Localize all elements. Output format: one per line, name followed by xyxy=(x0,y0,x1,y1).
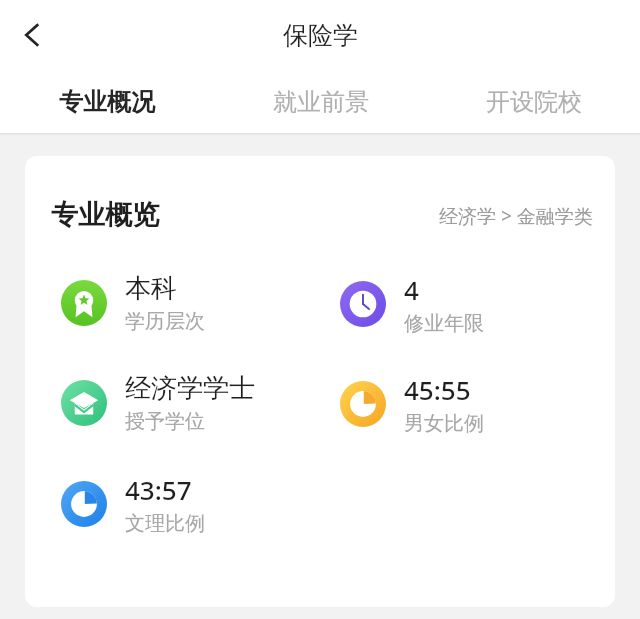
staticText: 修业年限 xyxy=(404,311,484,336)
staticText: 本科 xyxy=(125,272,177,305)
staticText: 学历层次 xyxy=(125,309,205,334)
button[interactable]: 开设院校 xyxy=(427,70,640,133)
staticText: 保险学 xyxy=(283,20,358,51)
staticText: 授予学位 xyxy=(125,409,205,434)
staticText: 45:55 xyxy=(404,372,471,407)
button[interactable]: 专业概览 xyxy=(25,156,615,607)
button[interactable]: Back xyxy=(6,9,58,61)
staticText: 经济学学士 xyxy=(125,372,255,405)
staticText: 专业概览 xyxy=(51,198,159,232)
staticText: 文理比例 xyxy=(125,511,205,536)
button[interactable]: 经济学学士 xyxy=(61,372,255,434)
button[interactable]: 4 xyxy=(340,272,484,336)
button[interactable]: 就业前景 xyxy=(214,70,427,133)
staticText: 4 xyxy=(404,272,419,307)
button[interactable]: 43:57 xyxy=(61,472,205,536)
button[interactable]: 专业概况 xyxy=(0,70,214,133)
staticText: 男女比例 xyxy=(404,411,484,436)
button[interactable]: 45:55 xyxy=(340,372,484,436)
staticText: 经济学 > 金融学类 xyxy=(439,203,593,229)
staticText: 就业前景 xyxy=(273,87,369,117)
staticText: 开设院校 xyxy=(486,87,582,117)
button[interactable]: 本科 xyxy=(61,272,205,334)
staticText: 43:57 xyxy=(125,472,192,507)
staticText: 专业概况 xyxy=(59,87,155,117)
